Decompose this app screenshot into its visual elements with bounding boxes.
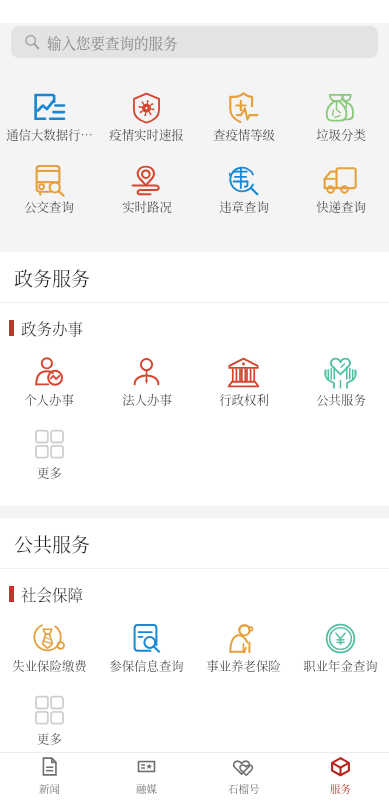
staticText: 更多	[37, 730, 62, 748]
staticText: 查疫情等级	[213, 126, 275, 144]
button[interactable]: 输入您要查询的服务	[11, 26, 378, 58]
staticText: 实时路况	[122, 198, 172, 216]
button[interactable]: 事业养老保险	[195, 618, 292, 691]
button[interactable]: 新闻	[0, 753, 98, 800]
button[interactable]: 公共服务	[0, 518, 389, 568]
staticText: 政务服务	[14, 264, 91, 291]
staticText: 职业年金查询	[303, 657, 378, 675]
staticText: 社会保障	[21, 583, 84, 605]
staticText: 参保信息查询	[109, 657, 184, 675]
staticText: 服务	[330, 781, 351, 796]
button[interactable]: 融媒	[98, 753, 195, 800]
button[interactable]: 实时路况	[98, 159, 195, 232]
button[interactable]: 更多	[0, 425, 98, 498]
button[interactable]: 快递查询	[292, 159, 389, 232]
staticText: 政务办事	[21, 317, 84, 339]
button[interactable]: 公共服务	[292, 352, 389, 425]
button[interactable]: 法人办事	[98, 352, 195, 425]
staticText: 更多	[37, 464, 62, 482]
staticText: 法人办事	[122, 391, 172, 409]
staticText: 快递查询	[316, 198, 366, 216]
button[interactable]: 职业年金查询	[292, 618, 389, 691]
button[interactable]: 违章查询	[195, 159, 292, 232]
staticText: 融媒	[136, 781, 157, 796]
button[interactable]: 石榴号	[195, 753, 292, 800]
button[interactable]: 更多	[0, 691, 98, 752]
staticText: 个人办事	[24, 391, 74, 409]
staticText: 行政权利	[219, 391, 269, 409]
staticText: 公共服务	[316, 391, 366, 409]
button[interactable]: 查疫情等级	[195, 87, 292, 160]
staticText: 通信大数据行…	[6, 126, 93, 144]
staticText: 违章查询	[219, 198, 269, 216]
button[interactable]: 个人办事	[0, 352, 98, 425]
staticText: 疫情实时速报	[109, 126, 184, 144]
button[interactable]: 失业保险缴费	[0, 618, 98, 691]
staticText: 失业保险缴费	[12, 657, 87, 675]
button[interactable]: 参保信息查询	[98, 618, 195, 691]
staticText: 石榴号	[228, 781, 260, 796]
staticText: 输入您要查询的服务	[47, 32, 178, 53]
button[interactable]: 行政权利	[195, 352, 292, 425]
button[interactable]: 政务服务	[0, 252, 389, 302]
button[interactable]: 公交查询	[0, 159, 98, 232]
button[interactable]: 服务	[292, 753, 389, 800]
staticText: 公交查询	[24, 198, 74, 216]
button[interactable]: 疫情实时速报	[98, 87, 195, 160]
staticText: 新闻	[39, 781, 60, 796]
staticText: 公共服务	[14, 530, 91, 557]
staticText: 垃圾分类	[316, 126, 366, 144]
button[interactable]: 通信大数据行…	[0, 87, 98, 160]
staticText: 事业养老保险	[206, 657, 281, 675]
button[interactable]: 垃圾分类	[292, 87, 389, 160]
